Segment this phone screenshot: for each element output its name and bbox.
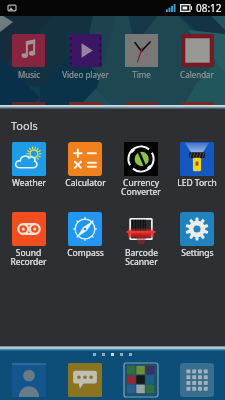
staticText: Video player	[62, 69, 109, 80]
staticText: Settings	[181, 247, 214, 259]
staticText: Currency Converter	[121, 177, 161, 198]
staticText: Barcode Scanner	[125, 247, 158, 268]
button[interactable]: Weather	[0, 142, 57, 189]
button[interactable]: All apps	[169, 363, 225, 397]
staticText: Music	[18, 69, 40, 80]
staticText: Calculator	[65, 177, 106, 189]
button[interactable]: Time	[113, 34, 169, 80]
button[interactable]: Contacts	[0, 363, 57, 397]
button[interactable]: Calculator	[57, 142, 113, 189]
staticText: LED Torch	[177, 177, 217, 189]
staticText: Compass	[67, 247, 104, 259]
button[interactable]: LED Torch	[169, 142, 225, 189]
staticText: Weather	[12, 177, 46, 189]
button[interactable]: Calendar	[169, 34, 225, 80]
button[interactable]: Video player	[57, 34, 113, 80]
button[interactable]: Barcode Scanner	[113, 212, 169, 268]
button[interactable]: Compass	[57, 212, 113, 259]
button[interactable]: Music	[0, 34, 57, 80]
button[interactable]: App folder	[113, 363, 169, 397]
button[interactable]: Messages	[57, 363, 113, 397]
staticText: Calendar	[180, 69, 214, 80]
staticText: Sound Recorder	[10, 247, 47, 268]
button[interactable]: Settings	[169, 212, 225, 259]
staticText: Time	[132, 69, 151, 80]
button[interactable]: Currency Converter	[113, 142, 169, 198]
staticText: 08:12	[196, 1, 222, 15]
button[interactable]: Sound Recorder	[0, 212, 57, 268]
staticText: Tools	[11, 118, 38, 133]
